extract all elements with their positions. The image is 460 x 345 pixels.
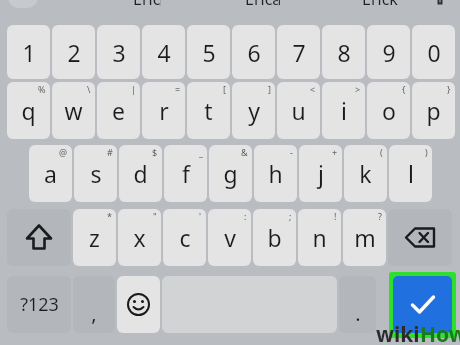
button[interactable]: 5 <box>187 25 230 79</box>
staticText: } <box>447 83 451 95</box>
staticText: [ <box>223 83 226 95</box>
staticText: Erick <box>362 0 398 10</box>
staticText: - <box>290 146 293 158</box>
button[interactable]: Emoji <box>117 276 160 333</box>
button[interactable]: 1 <box>7 25 50 79</box>
button[interactable]: | <box>97 82 140 139</box>
button[interactable]: \ <box>52 82 95 139</box>
button[interactable]: Shift <box>7 209 71 266</box>
staticText: : <box>244 210 247 222</box>
button[interactable]: # <box>74 145 117 202</box>
staticText: 5 <box>202 37 216 68</box>
staticText: & <box>241 146 248 158</box>
button[interactable]: - <box>254 145 297 202</box>
button[interactable]: } <box>412 82 455 139</box>
staticText: 9 <box>382 37 396 68</box>
staticText: w <box>64 95 83 126</box>
staticText: 0 <box>427 37 441 68</box>
staticText: u <box>291 95 306 126</box>
staticText: 7 <box>292 37 306 68</box>
button[interactable]: , <box>73 276 115 333</box>
button[interactable]: ! <box>298 209 341 266</box>
staticText: ; <box>289 210 292 222</box>
staticText: t <box>204 95 213 126</box>
staticText: l <box>408 158 414 189</box>
button[interactable]: 3 <box>97 25 140 79</box>
button[interactable]: Voice input <box>428 0 452 8</box>
button[interactable]: * <box>73 209 116 266</box>
button[interactable]: Expand suggestions <box>8 0 38 8</box>
staticText: ! <box>334 210 337 222</box>
staticText: p <box>426 95 441 126</box>
button[interactable]: ? <box>343 209 386 266</box>
staticText: j <box>318 158 324 189</box>
staticText: s <box>90 158 102 189</box>
button[interactable]: 0 <box>412 25 455 79</box>
staticText: v <box>224 222 236 253</box>
staticText: wiki <box>376 320 420 345</box>
button[interactable]: Erica <box>228 0 298 10</box>
staticText: # <box>107 146 113 158</box>
staticText: n <box>312 222 327 253</box>
staticText: 4 <box>157 37 171 68</box>
button[interactable]: 7 <box>277 25 320 79</box>
staticText: = <box>175 83 181 95</box>
staticText: h <box>268 158 283 189</box>
button[interactable]: ) <box>389 145 432 202</box>
button[interactable]: + <box>299 145 342 202</box>
button[interactable]: ( <box>344 145 387 202</box>
button[interactable]: [ <box>187 82 230 139</box>
button[interactable]: _ <box>164 145 207 202</box>
button[interactable]: $ <box>119 145 162 202</box>
staticText: z <box>89 222 100 253</box>
staticText: k <box>359 158 372 189</box>
staticText: . <box>355 300 361 327</box>
button[interactable]: . <box>339 276 376 333</box>
button[interactable]: : <box>208 209 251 266</box>
staticText: x <box>133 222 146 253</box>
staticText: a <box>44 158 57 189</box>
staticText: ( <box>380 146 383 158</box>
staticText: % <box>38 83 46 95</box>
staticText: + <box>332 146 338 158</box>
button[interactable]: " <box>118 209 161 266</box>
button[interactable]: ] <box>232 82 275 139</box>
staticText: ?123 <box>20 292 59 317</box>
button[interactable]: 4 <box>142 25 185 79</box>
button[interactable]: Backspace <box>388 209 452 266</box>
button[interactable]: 8 <box>322 25 365 79</box>
button[interactable]: 9 <box>367 25 410 79</box>
staticText: m <box>354 222 376 253</box>
staticText: How <box>420 320 460 345</box>
button[interactable]: ?123 <box>7 276 71 333</box>
staticText: 8 <box>337 37 351 68</box>
button[interactable]: @ <box>29 145 72 202</box>
staticText: ? <box>378 210 382 222</box>
button[interactable]: > <box>322 82 365 139</box>
button[interactable]: Erick <box>345 0 415 10</box>
button[interactable]: ; <box>253 209 296 266</box>
staticText: 1 <box>22 37 36 68</box>
button[interactable]: 2 <box>52 25 95 79</box>
staticText: * <box>107 210 112 222</box>
staticText: r <box>159 95 169 126</box>
button[interactable]: < <box>277 82 320 139</box>
button[interactable]: % <box>7 82 50 139</box>
staticText: ) <box>425 146 428 158</box>
button[interactable]: = <box>142 82 185 139</box>
staticText: Erica <box>245 0 282 10</box>
staticText: q <box>21 95 36 126</box>
button[interactable]: { <box>367 82 410 139</box>
button[interactable]: Enter <box>393 276 452 333</box>
staticText: b <box>267 222 282 253</box>
button[interactable]: 6 <box>232 25 275 79</box>
button[interactable]: ' <box>163 209 206 266</box>
staticText: 6 <box>247 37 261 68</box>
staticText: { <box>402 83 406 95</box>
button[interactable]: & <box>209 145 252 202</box>
staticText: ' <box>199 210 202 222</box>
staticText: " <box>153 210 157 222</box>
button[interactable]: Eric <box>112 0 182 10</box>
staticText: $ <box>152 146 158 158</box>
